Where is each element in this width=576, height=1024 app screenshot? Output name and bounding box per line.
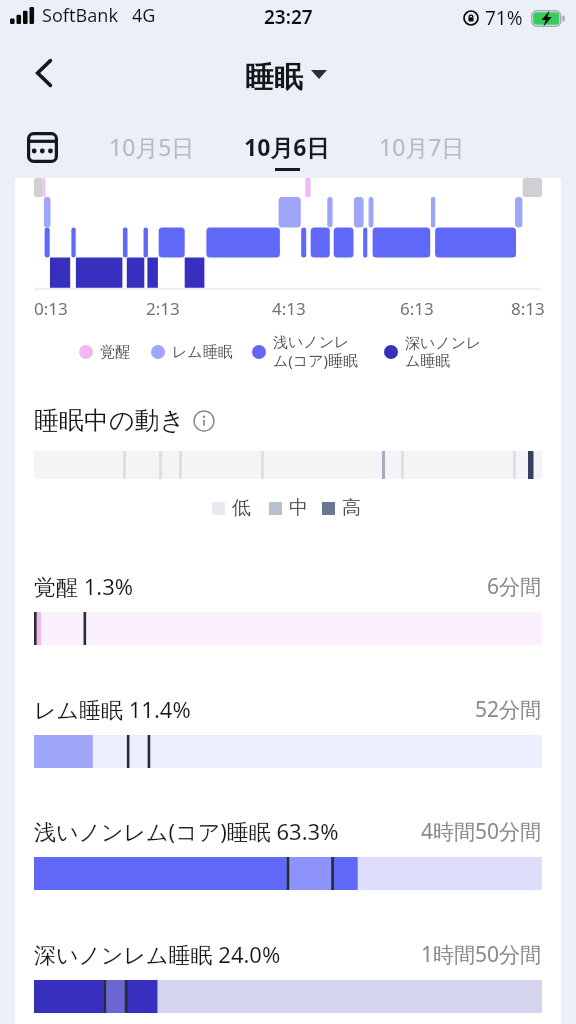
staticText: 6分間	[487, 572, 542, 601]
staticText: 4時間50分間	[421, 817, 542, 846]
button[interactable]: Info	[193, 410, 215, 432]
staticText: 23:27	[264, 4, 313, 30]
staticText: 中	[289, 496, 308, 520]
button[interactable]: 10月5日	[97, 105, 207, 178]
staticText: 深いノンレ ム睡眠	[405, 334, 482, 371]
staticText: 睡眠中の動き	[34, 405, 186, 436]
button[interactable]: Back	[20, 50, 66, 96]
staticText: レム睡眠	[172, 343, 233, 362]
staticText: SoftBank	[42, 3, 118, 28]
button[interactable]: 10月6日	[232, 105, 342, 178]
staticText: 覚醒	[100, 343, 130, 362]
staticText: 低	[232, 496, 251, 520]
staticText: 71%	[485, 5, 523, 31]
staticText: 覚醒 1.3%	[34, 571, 134, 601]
staticText: 睡眠	[245, 59, 303, 96]
staticText: 8:13	[511, 297, 545, 319]
staticText: 4G	[132, 3, 156, 28]
staticText: 1時間50分間	[421, 940, 542, 969]
staticText: 6:13	[400, 297, 434, 319]
staticText: 浅いノンレム(コア)睡眠 63.3%	[34, 816, 339, 846]
staticText: 2:13	[146, 297, 180, 319]
staticText: 4:13	[272, 297, 306, 319]
staticText: 10月7日	[379, 131, 465, 162]
staticText: 10月6日	[244, 131, 330, 162]
button[interactable]: 睡眠	[245, 59, 327, 96]
staticText: 浅いノンレ ム(コア)睡眠	[273, 333, 359, 371]
staticText: 深いノンレム睡眠 24.0%	[34, 939, 281, 969]
staticText: 10月5日	[109, 131, 195, 162]
staticText: 0:13	[34, 297, 68, 319]
staticText: 高	[342, 496, 361, 520]
staticText: 52分間	[475, 695, 542, 724]
button[interactable]: Calendar	[27, 132, 58, 163]
staticText: レム睡眠 11.4%	[34, 694, 191, 724]
button[interactable]: 10月7日	[367, 105, 477, 178]
